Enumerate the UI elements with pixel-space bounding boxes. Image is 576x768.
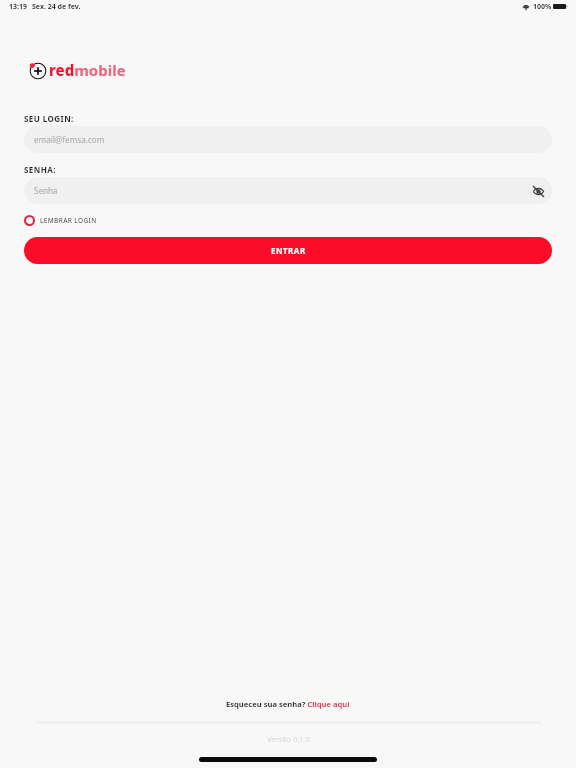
staticText: SEU LOGIN: xyxy=(24,113,74,124)
staticText: 100% xyxy=(533,2,552,12)
staticText: 13:19 xyxy=(9,2,27,12)
staticText: ENTRAR xyxy=(271,245,306,256)
other: Wi-Fi xyxy=(522,4,530,10)
button[interactable]: Campo de senha xyxy=(24,177,552,204)
button[interactable]: LEMBRAR LOGIN xyxy=(21,211,103,230)
button[interactable]: Esqueceu sua senha? Clique aqui xyxy=(222,695,354,713)
staticText: Sex. 24 de fev. xyxy=(32,2,81,12)
staticText: Senha xyxy=(34,185,58,196)
other: redmobile xyxy=(30,62,48,80)
button[interactable]: ENTRAR xyxy=(24,237,552,264)
staticText: redmobile xyxy=(49,60,126,80)
other: Bateria 100% xyxy=(553,4,568,9)
staticText: LEMBRAR LOGIN xyxy=(40,216,97,225)
staticText: Versão 0.1.0 xyxy=(267,734,310,744)
staticText: SENHA: xyxy=(24,164,56,175)
staticText: email@femsa.com xyxy=(34,134,105,145)
button[interactable]: Campo de login xyxy=(24,126,552,153)
button[interactable]: Mostrar senha xyxy=(525,178,551,204)
